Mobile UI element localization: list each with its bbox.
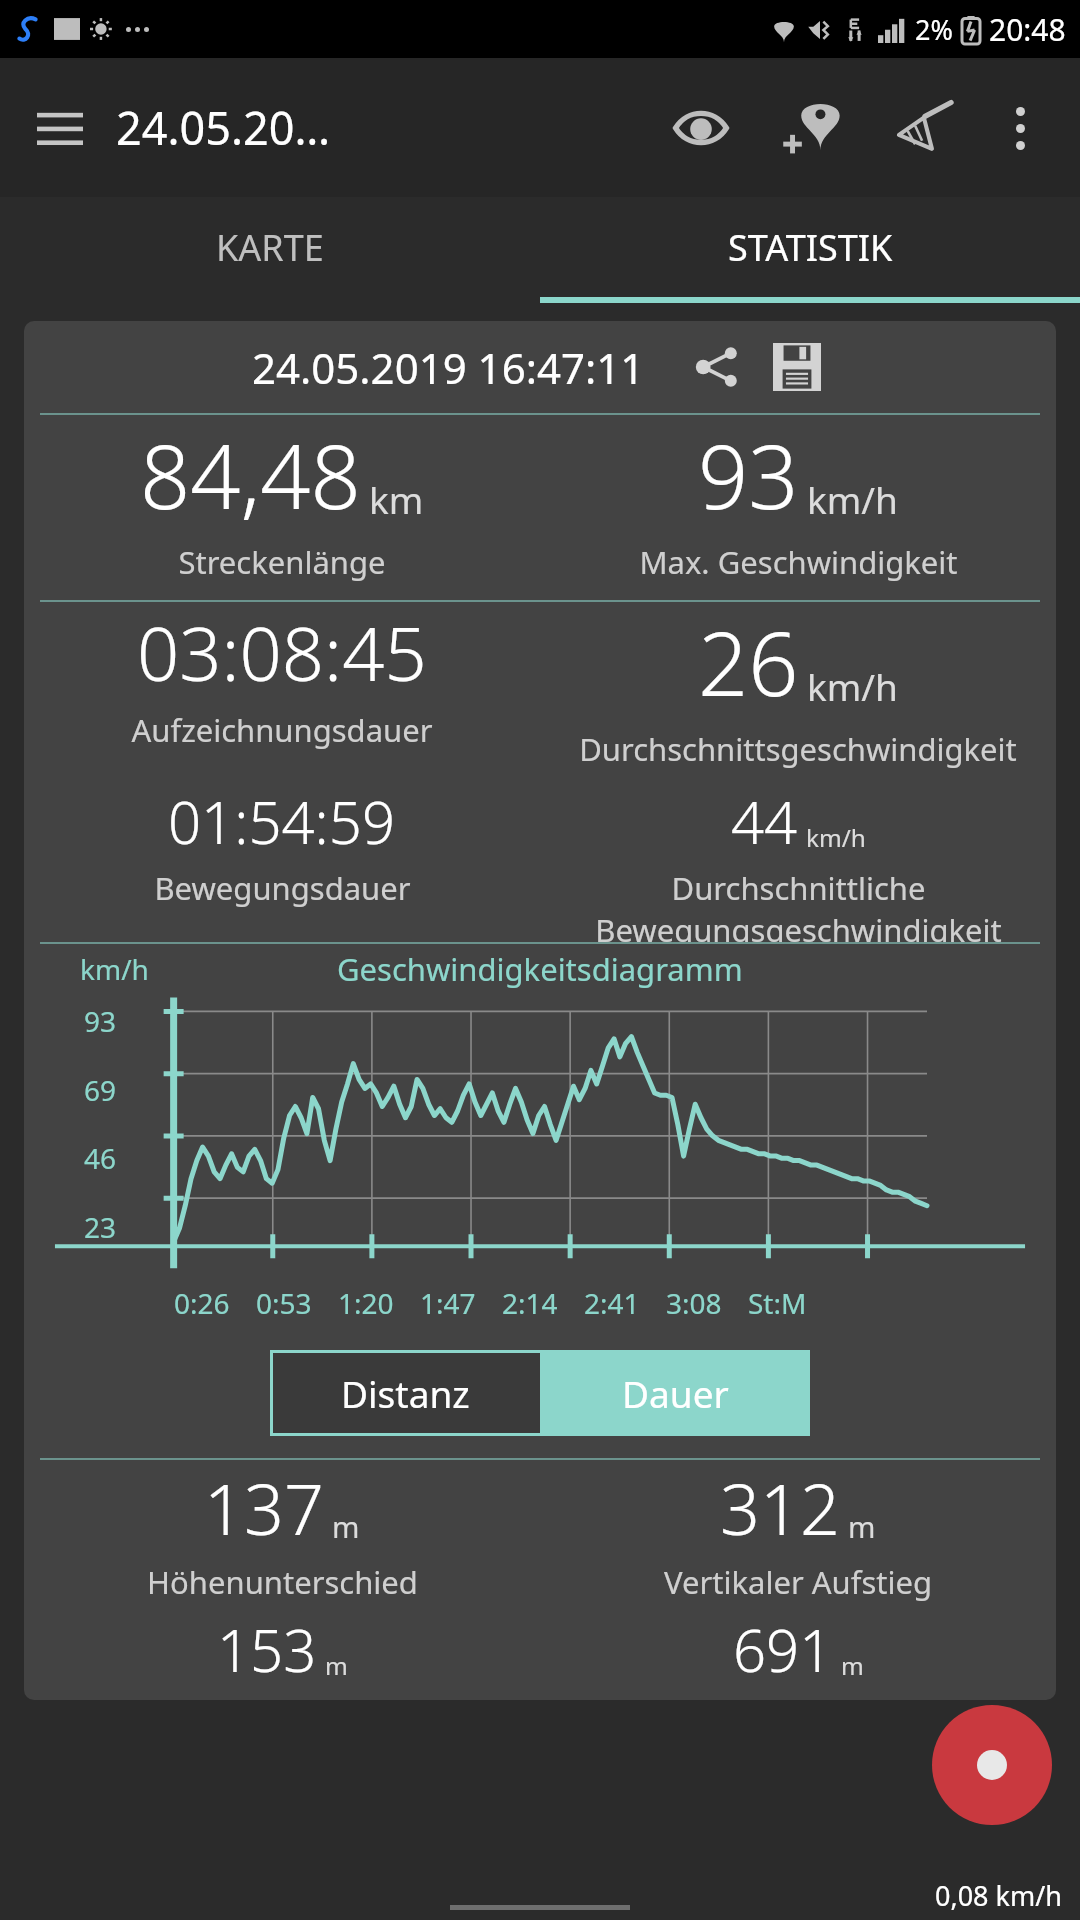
staticText: 26 <box>698 602 799 722</box>
button[interactable]: 691 <box>540 1610 1056 1689</box>
button[interactable]: 44 <box>540 782 1056 942</box>
button[interactable]: 26 <box>540 602 1056 770</box>
staticText: Streckenlänge <box>178 541 386 583</box>
staticText: 24.05.2019 16:47:11 <box>252 339 645 396</box>
staticText: 46 <box>84 1139 117 1177</box>
staticText: 01:54:59 <box>168 782 396 861</box>
staticText: 2:41 <box>584 1284 640 1322</box>
button[interactable]: 137 <box>24 1460 540 1603</box>
staticText: km/h <box>806 821 866 854</box>
staticText: km/h <box>80 950 149 988</box>
button[interactable]: Teilen <box>685 335 749 399</box>
staticText: Höhenunterschied <box>147 1561 418 1603</box>
button[interactable]: Aufräumen <box>882 85 968 171</box>
button[interactable]: Aufnahme starten <box>932 1705 1052 1825</box>
staticText: km/h <box>807 474 898 524</box>
staticText: KARTE <box>216 223 324 272</box>
button[interactable]: 01:54:59 <box>24 782 540 909</box>
staticText: STATISTIK <box>728 223 893 272</box>
button[interactable]: 153 <box>24 1610 540 1689</box>
staticText: 0:26 <box>174 1284 230 1322</box>
button[interactable]: Speichern <box>765 335 829 399</box>
button[interactable]: Menü <box>22 90 98 166</box>
button[interactable]: Sichtbarkeit <box>658 85 744 171</box>
staticText: Dauer <box>622 1368 729 1418</box>
button[interactable]: KARTE <box>0 197 540 297</box>
staticText: 2:14 <box>502 1284 558 1322</box>
staticText: 153 <box>217 1610 317 1689</box>
staticText: 691 <box>733 1610 833 1689</box>
staticText: 1:47 <box>420 1284 476 1322</box>
staticText: Bewegungsdauer <box>154 867 411 909</box>
staticText: 312 <box>720 1460 840 1555</box>
button[interactable]: 93 <box>540 415 1056 583</box>
button[interactable]: 24.05.2019 16:47:11 <box>24 321 1056 413</box>
button[interactable]: 312 <box>540 1460 1056 1603</box>
staticText: Durchschnittsgeschwindigkeit <box>579 728 1017 770</box>
staticText: km <box>369 474 424 524</box>
staticText: 0:53 <box>256 1284 312 1322</box>
staticText: 93 <box>698 415 799 535</box>
button[interactable]: STATISTIK <box>540 197 1080 297</box>
staticText: 0,08 km/h <box>935 1877 1062 1914</box>
staticText: m <box>848 1507 876 1547</box>
staticText: 20:48 <box>989 9 1066 50</box>
staticText: km/h <box>807 661 898 711</box>
button[interactable]: 03:08:45 <box>24 602 540 751</box>
staticText: 24.05.20… <box>116 97 331 158</box>
staticText: m <box>841 1649 864 1682</box>
staticText: Aufzeichnungsdauer <box>131 709 433 751</box>
button[interactable]: Dauer <box>540 1350 810 1436</box>
staticText: Distanz <box>341 1368 470 1418</box>
button[interactable]: 84,48 <box>24 415 540 583</box>
staticText: Max. Geschwindigkeit <box>639 541 958 583</box>
button[interactable]: Position hinzufügen <box>770 85 856 171</box>
staticText: 84,48 <box>140 415 361 535</box>
staticText: 44 <box>731 782 798 861</box>
staticText: 93 <box>84 1002 117 1040</box>
staticText: 137 <box>204 1460 324 1555</box>
staticText: 23 <box>84 1208 117 1246</box>
staticText: m <box>325 1649 348 1682</box>
staticText: St:M <box>748 1284 807 1322</box>
staticText: Durchschnittliche Bewegungsgeschwindigke… <box>595 867 1002 942</box>
staticText: 1:20 <box>338 1284 394 1322</box>
staticText: m <box>332 1507 360 1547</box>
staticText: 3:08 <box>666 1284 722 1322</box>
button[interactable]: Distanz <box>270 1350 540 1436</box>
staticText: 03:08:45 <box>137 602 427 703</box>
staticText: 2% <box>915 11 953 48</box>
staticText: Vertikaler Aufstieg <box>664 1561 932 1603</box>
staticText: 69 <box>84 1071 117 1109</box>
button[interactable]: Weitere Optionen <box>982 90 1058 166</box>
staticText: Geschwindigkeitsdiagramm <box>337 948 743 990</box>
